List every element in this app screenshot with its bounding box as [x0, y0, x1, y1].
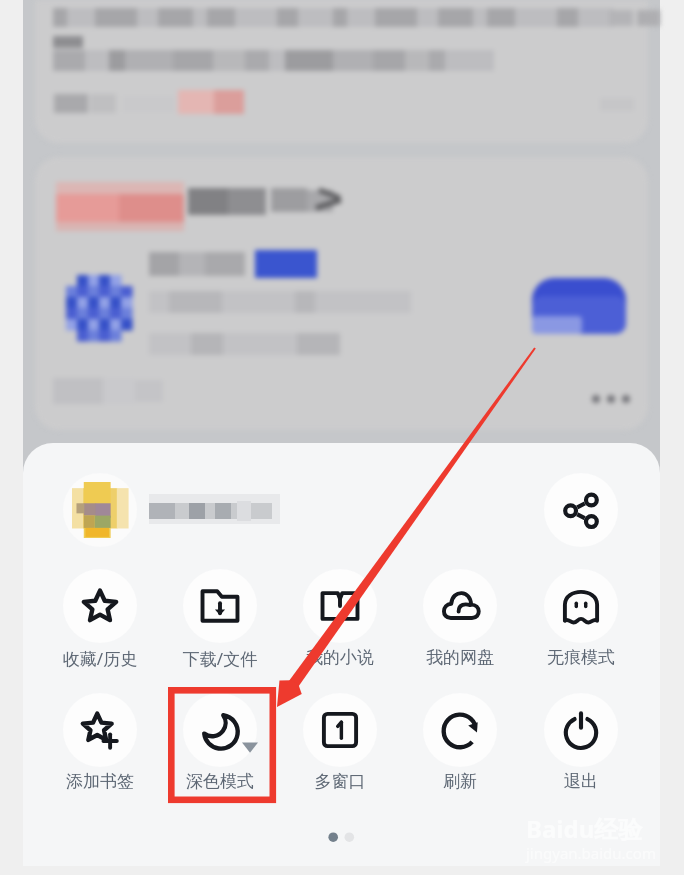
button[interactable]: 添加书签 [41, 693, 159, 805]
button[interactable]: 多窗口 [281, 693, 399, 805]
button[interactable]: 我的网盘 [401, 569, 519, 681]
staticText: 我的网盘 [401, 647, 519, 668]
staticText: 深色模式 [161, 771, 279, 792]
button[interactable]: 下载/文件 [161, 569, 279, 681]
button[interactable]: 收藏/历史 [41, 569, 159, 681]
button[interactable]: Account avatar [63, 473, 137, 547]
staticText: 下载/文件 [161, 647, 279, 670]
staticText: 退出 [522, 771, 640, 792]
staticText: 无痕模式 [522, 647, 640, 668]
button[interactable]: 退出 [522, 693, 640, 805]
button[interactable]: 我的小说 [281, 569, 399, 681]
staticText: 多窗口 [281, 771, 399, 792]
staticText: 我的小说 [281, 647, 399, 668]
button[interactable]: Share [544, 473, 618, 547]
staticText: 刷新 [401, 771, 519, 792]
button[interactable]: 深色模式 [161, 693, 279, 805]
button[interactable]: 无痕模式 [522, 569, 640, 681]
staticText: 收藏/历史 [41, 647, 159, 670]
button[interactable]: 刷新 [401, 693, 519, 805]
staticText: 添加书签 [41, 771, 159, 792]
